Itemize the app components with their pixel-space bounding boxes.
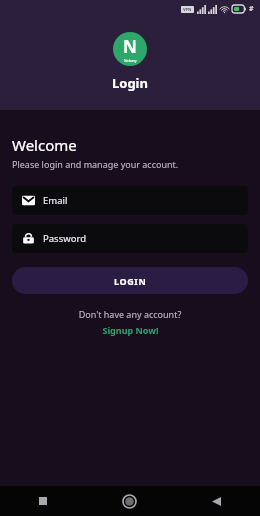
staticText: Welcome — [12, 135, 77, 155]
button[interactable]: Signup Now! — [12, 324, 248, 336]
staticText: VPN — [183, 7, 192, 12]
staticText: Signup Now! — [102, 324, 159, 336]
button[interactable]: Home — [86, 486, 173, 516]
staticText: Nekony — [124, 58, 137, 63]
staticText: Email — [43, 194, 68, 207]
button[interactable]: Password — [12, 224, 248, 253]
button[interactable]: Back — [173, 486, 260, 516]
staticText: Password — [43, 232, 86, 245]
staticText: Login — [112, 74, 148, 92]
staticText: Don't have any account? — [12, 308, 248, 320]
staticText: Please login and manage your account. — [12, 158, 179, 170]
staticText: N — [123, 35, 137, 58]
button[interactable]: LOGIN — [12, 267, 248, 294]
button[interactable]: Email — [12, 186, 248, 215]
staticText: LOGIN — [114, 275, 147, 287]
button[interactable]: Recent apps — [0, 486, 86, 516]
staticText: # — [249, 4, 254, 14]
